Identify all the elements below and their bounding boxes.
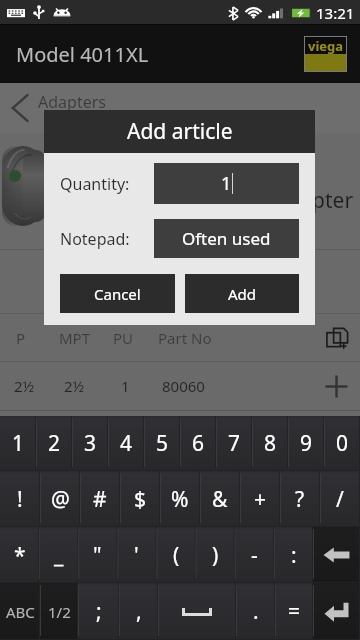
staticText: Adapter bbox=[274, 186, 354, 215]
staticText: Notepad: bbox=[60, 228, 130, 250]
button[interactable]: Back bbox=[0, 83, 360, 133]
button[interactable]: 9 bbox=[288, 416, 324, 471]
button[interactable]: % bbox=[160, 471, 200, 527]
button[interactable]: 2½ bbox=[0, 362, 360, 410]
staticText: _ bbox=[54, 541, 64, 570]
other: Back bbox=[8, 91, 34, 125]
staticText: 4 bbox=[120, 429, 133, 458]
staticText: ? bbox=[295, 485, 305, 514]
button[interactable]: . bbox=[236, 583, 275, 640]
button[interactable]: ) bbox=[196, 527, 235, 583]
button[interactable]: ( bbox=[157, 527, 196, 583]
button[interactable]: @ bbox=[40, 471, 80, 527]
button[interactable]: Copy list bbox=[320, 321, 354, 355]
button[interactable]: $ bbox=[120, 471, 160, 527]
button[interactable]: ABC bbox=[0, 583, 40, 640]
button[interactable]: _ bbox=[39, 527, 78, 583]
button[interactable]: + bbox=[240, 471, 280, 527]
staticText: @ bbox=[51, 485, 70, 514]
staticText: 13:21 bbox=[316, 3, 355, 23]
button[interactable]: 7 bbox=[216, 416, 252, 471]
button[interactable]: Often used bbox=[154, 219, 299, 258]
staticText: , bbox=[136, 597, 142, 626]
staticText: Model 4011XL bbox=[16, 41, 149, 68]
staticText: # bbox=[93, 485, 107, 514]
button[interactable]: - bbox=[235, 527, 274, 583]
button[interactable]: & bbox=[200, 471, 240, 527]
staticText: 2½ bbox=[14, 376, 35, 396]
button[interactable]: ! bbox=[0, 471, 40, 527]
button[interactable]: ' bbox=[117, 527, 156, 583]
staticText: 1 bbox=[12, 429, 25, 458]
staticText: * bbox=[14, 541, 26, 570]
staticText: 1/2 bbox=[48, 602, 71, 622]
button[interactable]: : bbox=[274, 527, 313, 583]
staticText: ! bbox=[17, 485, 23, 514]
staticText: P bbox=[16, 328, 26, 348]
staticText: 1 bbox=[121, 376, 130, 396]
staticText: 9 bbox=[300, 429, 313, 458]
button[interactable]: / bbox=[320, 471, 360, 527]
staticText: 8 bbox=[264, 429, 277, 458]
button[interactable]: # bbox=[80, 471, 120, 527]
button[interactable]: ? bbox=[280, 471, 320, 527]
button[interactable]: 3 bbox=[72, 416, 108, 471]
staticText: % bbox=[171, 485, 189, 514]
button[interactable]: 1 bbox=[0, 416, 36, 471]
button[interactable]: = bbox=[275, 583, 313, 640]
button[interactable]: Cancel bbox=[60, 274, 175, 313]
button[interactable]: * bbox=[0, 527, 39, 583]
staticText: PU bbox=[113, 328, 134, 348]
staticText: Cancel bbox=[94, 284, 141, 304]
staticText: Add article bbox=[127, 117, 233, 146]
staticText: Add bbox=[228, 284, 257, 304]
button[interactable]: Add bbox=[185, 274, 299, 313]
staticText: ; bbox=[96, 597, 102, 626]
button[interactable]: 0 bbox=[324, 416, 360, 471]
staticText: 6 bbox=[192, 429, 205, 458]
staticText: . bbox=[253, 597, 259, 626]
staticText: Often used bbox=[182, 227, 271, 250]
button[interactable]: viega logo bbox=[305, 37, 346, 71]
button[interactable]: Add article bbox=[321, 371, 351, 401]
staticText: ) bbox=[212, 541, 219, 570]
button[interactable]: ; bbox=[78, 583, 119, 640]
staticText: Part No bbox=[158, 328, 212, 348]
staticText: + bbox=[254, 485, 267, 514]
staticText: 2½ bbox=[64, 376, 85, 396]
button[interactable]: Backspace bbox=[313, 527, 360, 583]
staticText: 80060 bbox=[162, 376, 205, 396]
button[interactable]: 4 bbox=[108, 416, 144, 471]
staticText: 5 bbox=[156, 429, 169, 458]
button[interactable]: " bbox=[78, 527, 117, 583]
staticText: Adapters bbox=[38, 91, 106, 113]
button[interactable]: P bbox=[0, 314, 360, 361]
staticText: 1 bbox=[221, 171, 232, 196]
button[interactable]: 1/2 bbox=[40, 583, 78, 640]
button[interactable]: 8 bbox=[252, 416, 288, 471]
staticText: & bbox=[212, 485, 228, 514]
staticText: $ bbox=[134, 485, 147, 514]
staticText: 7 bbox=[228, 429, 241, 458]
staticText: = bbox=[288, 597, 301, 626]
button[interactable]: 6 bbox=[180, 416, 216, 471]
staticText: 2 bbox=[48, 429, 61, 458]
staticText: ABC bbox=[6, 602, 35, 622]
staticText: Quantity: bbox=[60, 173, 130, 195]
staticText: MPT bbox=[59, 328, 91, 348]
staticText: viega bbox=[308, 37, 344, 54]
button[interactable]: , bbox=[119, 583, 158, 640]
button[interactable]: Space bbox=[158, 583, 236, 640]
button[interactable]: 1 bbox=[154, 163, 299, 204]
staticText: / bbox=[336, 485, 344, 514]
staticText: ( bbox=[173, 541, 180, 570]
staticText: ' bbox=[134, 541, 139, 570]
staticText: 0 bbox=[336, 429, 349, 458]
staticText: 3 bbox=[84, 429, 97, 458]
button[interactable]: Enter bbox=[313, 583, 360, 640]
staticText: " bbox=[93, 541, 102, 570]
button[interactable]: 5 bbox=[144, 416, 180, 471]
button[interactable]: 2 bbox=[36, 416, 72, 471]
button[interactable]: Model 4011XL bbox=[0, 25, 360, 83]
staticText: - bbox=[251, 541, 258, 570]
